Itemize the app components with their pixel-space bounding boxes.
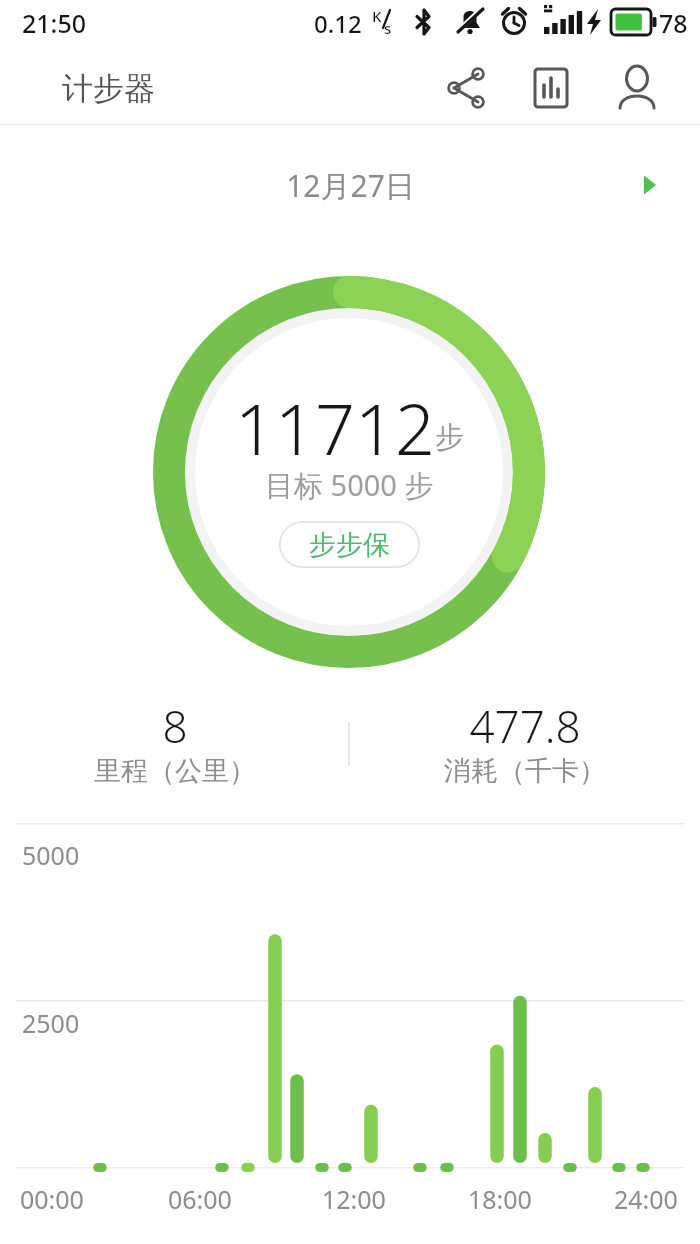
- button[interactable]: 计步器: [40, 57, 230, 119]
- button[interactable]: 8: [30, 694, 320, 804]
- staticText: 步步保: [309, 528, 390, 562]
- button[interactable]: Profile: [603, 54, 671, 122]
- button[interactable]: Next day: [618, 154, 680, 216]
- staticText: 8: [30, 696, 320, 756]
- staticText: 目标 5000 步: [265, 465, 434, 505]
- staticText: 477.8: [380, 696, 670, 756]
- staticText: 00:00: [20, 1182, 84, 1216]
- staticText: K: [372, 6, 382, 26]
- staticText: 12月27日: [286, 165, 415, 206]
- staticText: 计步器: [62, 69, 155, 108]
- staticText: 06:00: [168, 1182, 232, 1216]
- staticText: 18:00: [468, 1182, 532, 1216]
- staticText: s: [384, 18, 392, 38]
- staticText: 12:00: [322, 1182, 386, 1216]
- staticText: 78: [659, 6, 688, 40]
- staticText: 0.12: [314, 7, 362, 40]
- staticText: 消耗（千卡）: [380, 754, 670, 788]
- button[interactable]: 12月27日: [255, 154, 445, 216]
- button[interactable]: 步步保: [279, 521, 420, 568]
- staticText: 24:00: [614, 1182, 678, 1216]
- staticText: 里程（公里）: [30, 754, 320, 788]
- staticText: 2500: [22, 1006, 80, 1040]
- staticText: 5000: [22, 838, 80, 872]
- button[interactable]: Share: [433, 54, 501, 122]
- staticText: 步: [435, 419, 464, 456]
- button[interactable]: Statistics: [517, 54, 585, 122]
- staticText: 21:50: [22, 6, 87, 40]
- button[interactable]: 477.8: [380, 694, 670, 804]
- staticText: 11712: [235, 380, 435, 464]
